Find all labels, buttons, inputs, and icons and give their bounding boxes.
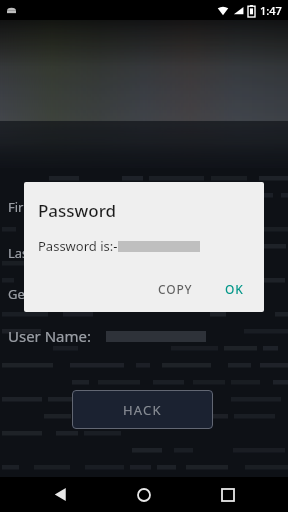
button[interactable]: Home xyxy=(120,477,168,512)
staticText: HACK xyxy=(123,401,162,419)
staticText: Last Name: xyxy=(8,244,77,262)
staticText: Gender: xyxy=(8,285,58,303)
staticText: Password is:- xyxy=(38,237,118,255)
staticText: 1:47 xyxy=(260,3,282,18)
staticText: User Name: xyxy=(8,326,92,346)
button[interactable]: COPY xyxy=(150,275,201,303)
staticText: Password xyxy=(38,199,117,222)
button[interactable]: OK xyxy=(217,275,252,303)
staticText: First Name: xyxy=(8,198,78,216)
button[interactable]: Back xyxy=(36,477,84,512)
button[interactable]: HACK xyxy=(72,390,213,429)
button[interactable]: Recent apps xyxy=(204,477,252,512)
staticText: COPY xyxy=(158,281,193,297)
staticText: OK xyxy=(225,281,244,297)
